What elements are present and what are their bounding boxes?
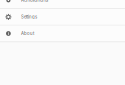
button[interactable]: Achievements [0, 0, 125, 8]
button[interactable]: Settings [0, 9, 125, 25]
button[interactable]: About [0, 26, 125, 41]
staticText: Settings [21, 14, 37, 19]
staticText: Achievements [21, 0, 48, 3]
staticText: About [21, 31, 34, 36]
